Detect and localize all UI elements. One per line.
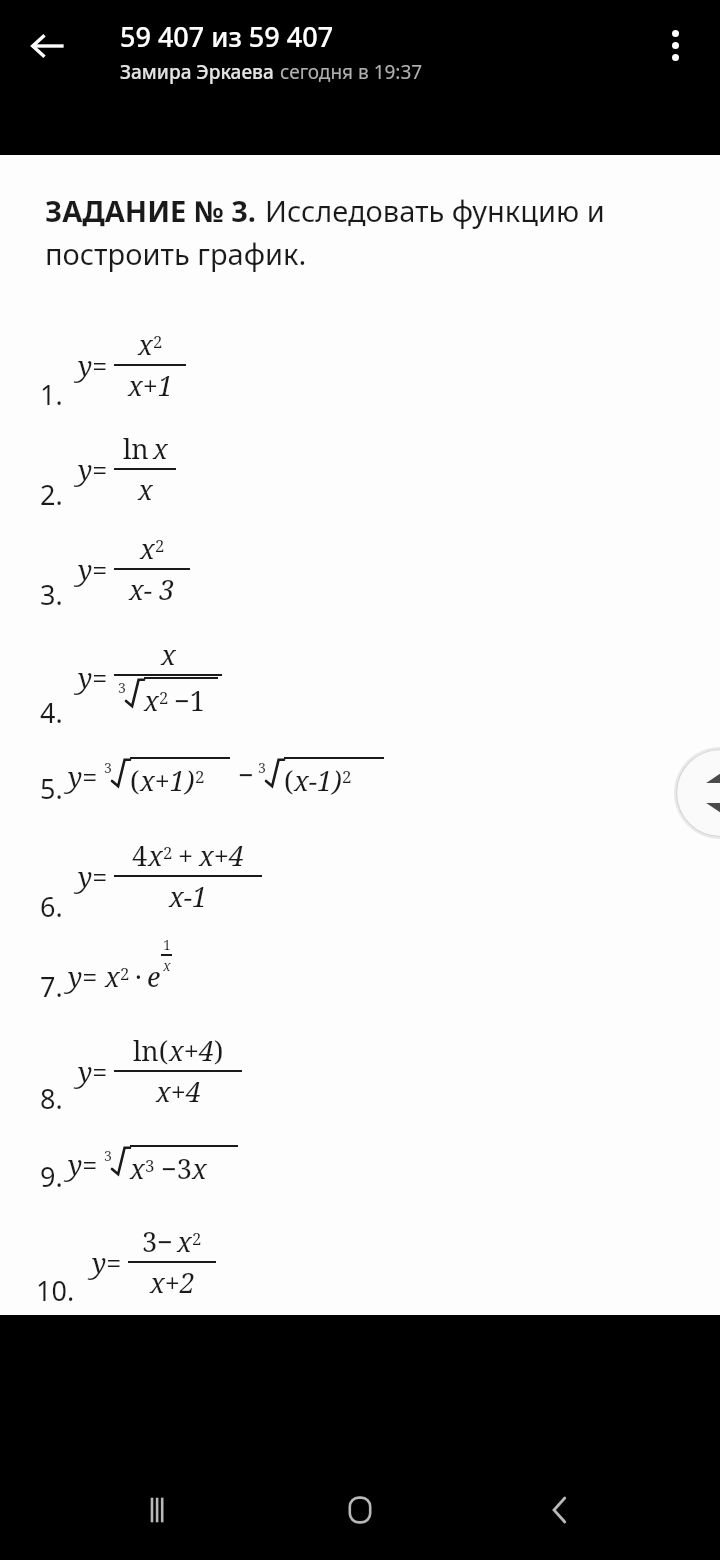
- staticText: 2: [153, 330, 163, 353]
- staticText: 2: [155, 534, 165, 557]
- staticText: 3: [104, 758, 112, 777]
- button[interactable]: 8.: [0, 1019, 720, 1123]
- staticText: Замира Эркаева: [120, 59, 274, 85]
- staticText: x+2: [150, 1264, 195, 1301]
- staticText: 2: [342, 765, 352, 788]
- staticText: y=: [78, 1053, 108, 1090]
- button[interactable]: 5.: [0, 735, 720, 821]
- button[interactable]: 9.: [0, 1123, 720, 1209]
- button[interactable]: Back: [520, 1470, 600, 1550]
- staticText: 3: [258, 758, 266, 777]
- button[interactable]: Recent apps: [118, 1470, 198, 1550]
- button[interactable]: Home: [320, 1470, 400, 1550]
- staticText: x+4: [169, 1032, 214, 1069]
- staticText: −3: [161, 1150, 192, 1187]
- staticText: 1.: [40, 376, 63, 413]
- button[interactable]: 3.: [0, 519, 720, 619]
- staticText: x: [105, 958, 120, 995]
- staticText: ln(: [133, 1032, 169, 1069]
- staticText: 4.: [40, 694, 63, 731]
- staticText: x+1): [140, 762, 195, 799]
- staticText: −1: [174, 682, 205, 719]
- button[interactable]: 2.: [0, 419, 720, 519]
- staticText: 8.: [40, 1080, 63, 1117]
- staticText: x: [153, 430, 168, 467]
- button[interactable]: Fast scroll: [674, 747, 720, 839]
- staticText: e: [147, 958, 161, 995]
- staticText: ln: [123, 430, 149, 467]
- button[interactable]: 10.: [0, 1209, 720, 1315]
- staticText: x: [144, 682, 159, 719]
- staticText: (: [284, 762, 294, 799]
- staticText: x: [161, 636, 176, 673]
- staticText: 59 407 из 59 407: [120, 18, 334, 55]
- staticText: 2: [120, 962, 130, 985]
- staticText: 9.: [40, 1158, 63, 1195]
- staticText: ·: [135, 958, 142, 995]
- staticText: 5.: [40, 770, 63, 807]
- staticText: x: [163, 956, 171, 975]
- button[interactable]: 4.: [0, 619, 720, 735]
- button[interactable]: 1.: [0, 311, 720, 419]
- staticText: x: [130, 1150, 145, 1187]
- staticText: 2: [159, 686, 169, 709]
- staticText: ): [214, 1032, 224, 1069]
- staticText: y=: [78, 659, 108, 696]
- staticText: x: [138, 471, 153, 508]
- staticText: −: [238, 756, 254, 793]
- staticText: x−1): [294, 762, 342, 799]
- staticText: y=: [68, 958, 98, 995]
- button[interactable]: 7.: [0, 931, 720, 1019]
- staticText: 2: [192, 1227, 202, 1250]
- staticText: 3: [145, 1154, 155, 1177]
- staticText: 3: [118, 678, 126, 697]
- button[interactable]: Back: [12, 10, 84, 82]
- staticText: 2: [163, 841, 173, 864]
- staticText: Исследовать функцию и: [265, 191, 605, 230]
- staticText: x: [192, 1150, 207, 1187]
- staticText: y=: [78, 451, 108, 488]
- staticText: x− 3: [129, 571, 175, 608]
- staticText: сегодня в 19:37: [280, 59, 423, 85]
- staticText: (: [130, 762, 140, 799]
- staticText: ЗАДАНИЕ № 3.: [45, 191, 257, 230]
- staticText: x: [177, 1223, 192, 1260]
- staticText: 3.: [40, 576, 63, 613]
- staticText: 1: [163, 935, 171, 954]
- staticText: y=: [78, 858, 108, 895]
- staticText: x−1: [169, 878, 208, 915]
- staticText: y=: [68, 758, 98, 795]
- staticText: y=: [78, 551, 108, 588]
- staticText: 3: [104, 1146, 112, 1165]
- staticText: y=: [68, 1146, 98, 1183]
- button[interactable]: More options: [642, 12, 708, 78]
- staticText: 6.: [40, 888, 63, 925]
- staticText: 2.: [40, 476, 63, 513]
- staticText: y=: [78, 347, 108, 384]
- staticText: y=: [92, 1244, 122, 1281]
- button[interactable]: 6.: [0, 821, 720, 931]
- staticText: x+4: [156, 1073, 201, 1110]
- staticText: x+4: [199, 837, 244, 874]
- staticText: x: [148, 837, 163, 874]
- staticText: 4: [132, 837, 148, 874]
- staticText: 7.: [40, 968, 63, 1005]
- staticText: x: [138, 326, 153, 363]
- staticText: +: [178, 837, 194, 874]
- staticText: x+1: [128, 367, 173, 404]
- staticText: 3−: [142, 1223, 173, 1260]
- staticText: 10.: [36, 1272, 75, 1309]
- staticText: построить график.: [45, 234, 307, 273]
- staticText: x: [140, 530, 155, 567]
- staticText: 2: [195, 765, 205, 788]
